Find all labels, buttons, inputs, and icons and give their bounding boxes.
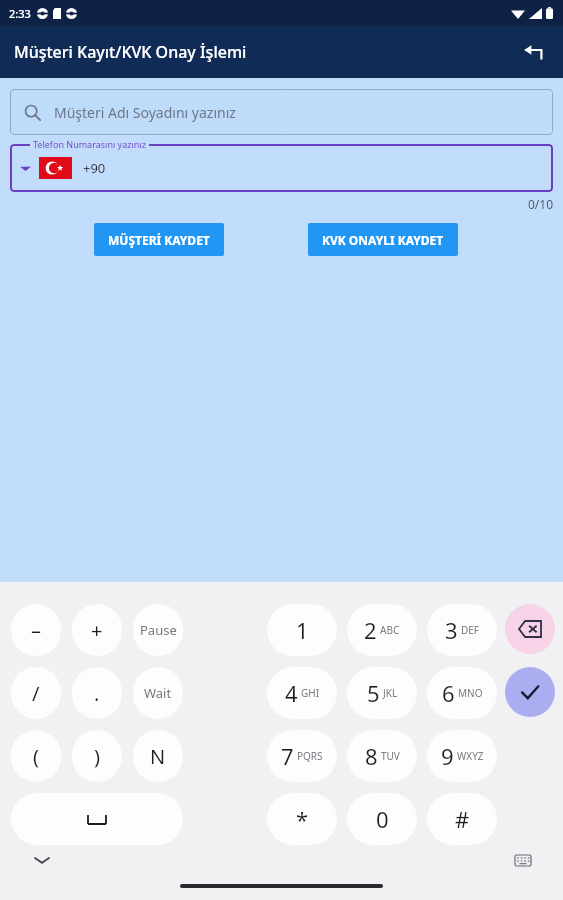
- staticText: *: [296, 804, 309, 834]
- staticText: Telefon Numarasını yazınız: [33, 138, 146, 150]
- staticText: 2: [364, 615, 377, 645]
- staticText: (: [33, 743, 39, 770]
- button[interactable]: Boşluk: [11, 793, 183, 845]
- button[interactable]: 7: [267, 730, 337, 782]
- button[interactable]: 6: [427, 667, 497, 719]
- button[interactable]: MÜŞTERİ KAYDET: [94, 223, 224, 256]
- staticText: +90: [83, 159, 106, 177]
- button[interactable]: #: [427, 793, 497, 845]
- button[interactable]: (: [11, 730, 61, 782]
- staticText: 2:33: [9, 6, 31, 21]
- staticText: Müşteri Kayıt/KVK Onay İşlemi: [14, 41, 247, 63]
- staticText: JKL: [383, 686, 398, 700]
- staticText: 1: [296, 615, 309, 645]
- staticText: Müşteri Adı Soyadını yazınız: [54, 103, 236, 122]
- staticText: Wait: [144, 684, 172, 702]
- button[interactable]: Pause: [133, 604, 183, 656]
- button[interactable]: /: [11, 667, 61, 719]
- staticText: 5: [367, 678, 380, 708]
- button[interactable]: +: [72, 604, 122, 656]
- staticText: ): [94, 743, 100, 770]
- button[interactable]: 4: [267, 667, 337, 719]
- button[interactable]: 8: [347, 730, 417, 782]
- staticText: DEF: [461, 623, 480, 637]
- button[interactable]: Geri sil: [505, 604, 555, 654]
- staticText: ABC: [380, 623, 400, 637]
- button[interactable]: Geri: [513, 32, 553, 72]
- staticText: Pause: [140, 621, 177, 639]
- staticText: –: [31, 617, 41, 644]
- button[interactable]: Tamam: [505, 667, 555, 717]
- staticText: /: [32, 680, 40, 707]
- staticText: .: [94, 680, 100, 707]
- staticText: #: [455, 804, 470, 834]
- button[interactable]: Wait: [133, 667, 183, 719]
- button[interactable]: KVK ONAYLI KAYDET: [308, 223, 458, 256]
- button[interactable]: –: [11, 604, 61, 656]
- staticText: 0/10: [10, 196, 553, 212]
- button[interactable]: ): [72, 730, 122, 782]
- button[interactable]: 0: [347, 793, 417, 845]
- staticText: MÜŞTERİ KAYDET: [108, 232, 210, 248]
- staticText: 9: [441, 741, 454, 771]
- staticText: 4: [285, 678, 298, 708]
- staticText: WXYZ: [457, 749, 484, 763]
- staticText: 7: [281, 741, 294, 771]
- button[interactable]: 5: [347, 667, 417, 719]
- button[interactable]: .: [72, 667, 122, 719]
- button[interactable]: 9: [427, 730, 497, 782]
- button[interactable]: Klavye değiştir: [511, 848, 535, 872]
- button[interactable]: 3: [427, 604, 497, 656]
- button[interactable]: *: [267, 793, 337, 845]
- staticText: 0: [376, 804, 389, 834]
- staticText: N: [150, 743, 166, 770]
- staticText: 3: [445, 615, 458, 645]
- button[interactable]: Müşteri Adı Soyadını yazınız: [10, 89, 553, 135]
- button[interactable]: +90: [10, 144, 553, 192]
- button[interactable]: N: [133, 730, 183, 782]
- button[interactable]: 2: [347, 604, 417, 656]
- button[interactable]: Klavyeyi gizle: [30, 848, 54, 872]
- staticText: MNO: [458, 686, 483, 700]
- staticText: TUV: [381, 749, 400, 763]
- staticText: KVK ONAYLI KAYDET: [322, 232, 444, 248]
- staticText: PQRS: [297, 749, 323, 763]
- staticText: 8: [365, 741, 378, 771]
- staticText: 6: [442, 678, 455, 708]
- staticText: GHI: [301, 686, 320, 700]
- staticText: +: [91, 617, 103, 644]
- button[interactable]: 1: [267, 604, 337, 656]
